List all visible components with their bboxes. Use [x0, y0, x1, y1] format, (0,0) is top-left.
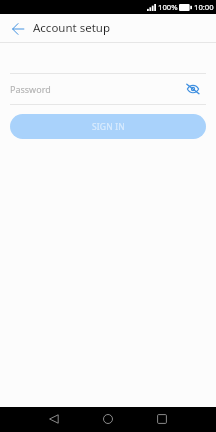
staticText: Account setup: [33, 20, 111, 36]
staticText: Password: [10, 83, 51, 95]
button[interactable]: Home: [92, 406, 123, 431]
button[interactable]: SIGN IN: [10, 114, 206, 139]
button[interactable]: Back: [4, 15, 31, 42]
staticText: SIGN IN: [92, 121, 125, 133]
button[interactable]: Show password: [182, 77, 204, 99]
staticText: 100%: [158, 2, 178, 12]
staticText: 10:00: [194, 2, 214, 12]
button[interactable]: Recent apps: [146, 406, 177, 431]
button[interactable]: Back: [38, 406, 69, 431]
button[interactable]: Password: [10, 74, 182, 104]
